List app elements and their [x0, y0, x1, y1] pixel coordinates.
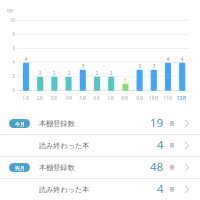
staticText: 3 — [133, 63, 147, 70]
other: 詳細を見る — [185, 142, 189, 149]
button[interactable]: 読み終わった本 — [0, 178, 200, 200]
staticText: 2 — [33, 70, 47, 77]
staticText: 今月 — [15, 121, 25, 127]
staticText: 2 — [90, 70, 104, 77]
staticText: 本棚登録数 — [39, 163, 75, 172]
other: 詳細を見る — [185, 164, 189, 171]
staticText: 読み終わった本 — [39, 185, 90, 194]
staticText: 9月 — [132, 95, 148, 101]
staticText: 4 — [175, 56, 189, 63]
staticText: 10 — [0, 17, 15, 23]
staticText: 先月 — [15, 165, 25, 171]
staticText: 4 — [19, 56, 33, 63]
staticText: 本棚登録数 — [39, 119, 75, 128]
staticText: 2 — [104, 70, 118, 77]
staticText: 11月 — [160, 95, 176, 101]
staticText: 冊 — [169, 186, 175, 193]
staticText: 8月 — [117, 95, 133, 101]
staticText: 4月 — [61, 95, 77, 101]
staticText: 6月 — [89, 95, 105, 101]
staticText: 7月 — [103, 95, 119, 101]
staticText: 4 — [157, 137, 164, 153]
staticText: 4 — [157, 181, 164, 197]
staticText: 4 — [161, 56, 175, 63]
staticText: 0 — [0, 87, 15, 93]
staticText: 2月 — [32, 95, 48, 101]
staticText: 3月 — [46, 95, 62, 101]
staticText: (冊) — [7, 8, 14, 14]
staticText: 2 — [62, 70, 76, 77]
staticText: 冊 — [169, 142, 175, 149]
staticText: 3 — [147, 63, 161, 70]
staticText: 48 — [150, 159, 164, 175]
staticText: 8 — [0, 31, 15, 37]
button[interactable]: 読み終わった本 — [0, 134, 200, 156]
staticText: 12月 — [174, 95, 190, 101]
staticText: 19 — [150, 115, 164, 131]
staticText: 2 — [47, 70, 61, 77]
staticText: 読み終わった本 — [39, 141, 90, 150]
staticText: 5月 — [75, 95, 91, 101]
staticText: 4 — [0, 59, 15, 65]
button[interactable]: 今月 — [0, 112, 200, 134]
other: 詳細を見る — [185, 186, 189, 193]
staticText: 3 — [76, 63, 90, 70]
staticText: 1月 — [18, 95, 34, 101]
staticText: 冊 — [169, 120, 175, 127]
staticText: 6 — [0, 45, 15, 51]
staticText: 1 — [118, 77, 132, 84]
staticText: 2 — [0, 73, 15, 79]
staticText: 10月 — [146, 95, 162, 101]
button[interactable]: 先月 — [0, 156, 200, 178]
staticText: 冊 — [169, 164, 175, 171]
other: 詳細を見る — [185, 120, 189, 127]
